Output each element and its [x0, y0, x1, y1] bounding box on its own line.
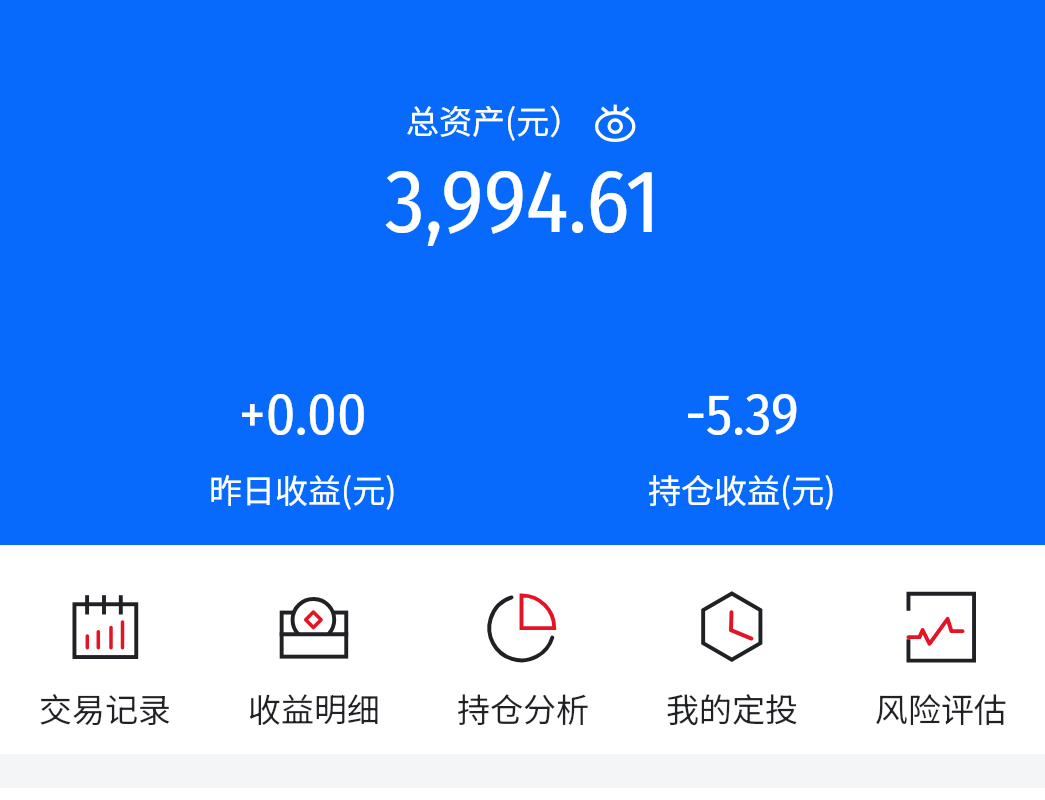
staticText: 我的定投	[666, 684, 798, 732]
button[interactable]: 持仓分析	[418, 590, 627, 732]
staticText: 交易记录	[39, 684, 171, 732]
staticText: 风险评估	[875, 684, 1007, 732]
button[interactable]: +0.00	[84, 380, 522, 513]
staticText: 3,994.61	[385, 150, 661, 256]
staticText: 收益明细	[248, 684, 380, 732]
button[interactable]: 收益明细	[209, 590, 418, 732]
staticText: 总资产(元）	[406, 96, 583, 144]
staticText: +0.00	[239, 380, 368, 450]
button[interactable]: -5.39	[522, 380, 961, 513]
button[interactable]: Toggle amount visibility	[591, 96, 639, 144]
button[interactable]: 我的定投	[627, 590, 836, 732]
button[interactable]: 风险评估	[836, 590, 1045, 732]
staticText: 持仓分析	[457, 684, 589, 732]
staticText: -5.39	[685, 380, 799, 450]
staticText: 持仓收益(元)	[648, 465, 836, 513]
button[interactable]: 交易记录	[0, 590, 209, 732]
staticText: 昨日收益(元)	[209, 465, 397, 513]
